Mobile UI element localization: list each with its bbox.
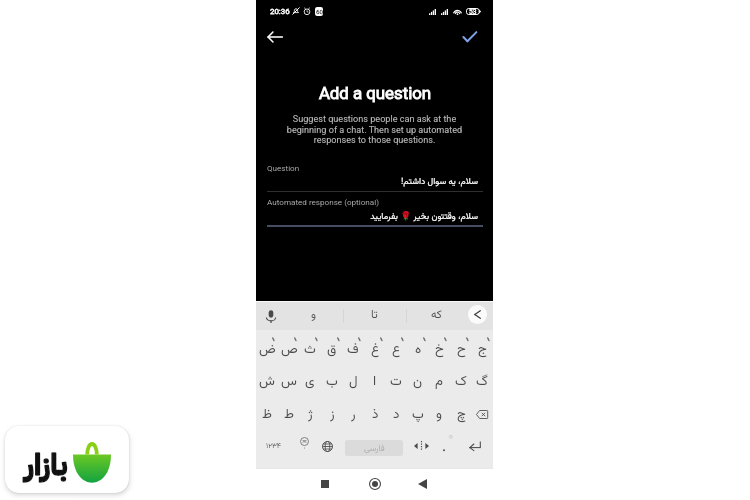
button[interactable]: غ [364, 333, 386, 365]
button[interactable]: ث [299, 333, 321, 365]
button[interactable]: خ [428, 333, 450, 365]
staticText: ذ [372, 404, 379, 425]
staticText: ک [455, 371, 467, 392]
staticText: ژ [308, 404, 313, 425]
staticText: 53 [469, 8, 477, 15]
button[interactable]: ز [321, 398, 343, 430]
button[interactable]: Recent apps [311, 470, 339, 498]
staticText: ج [478, 339, 487, 360]
staticText: فارسی [364, 442, 385, 455]
button[interactable]: ا [364, 365, 386, 397]
button[interactable]: Change keyboard language [315, 430, 339, 462]
staticText: ض [259, 339, 276, 360]
button[interactable]: پ [407, 398, 429, 430]
staticText: ح [457, 339, 466, 360]
button[interactable]: چ [450, 398, 472, 430]
staticText: ا [373, 371, 377, 392]
button[interactable]: Navigate up [262, 24, 288, 50]
staticText: بازار [25, 442, 68, 487]
staticText: ه [415, 339, 422, 360]
button[interactable]: ش [256, 365, 278, 397]
staticText: س [281, 371, 297, 392]
button[interactable]: س [278, 365, 300, 397]
button[interactable]: ۱۲۳۴ [262, 430, 286, 462]
button[interactable]: ه [407, 333, 429, 365]
staticText: ز [330, 404, 335, 425]
staticText: م [435, 371, 443, 392]
button[interactable]: ن [407, 365, 429, 397]
button[interactable]: ل [342, 365, 364, 397]
button[interactable]: که [407, 302, 466, 328]
staticText: ن [413, 371, 423, 392]
button[interactable]: ب [321, 365, 343, 397]
staticText: ث [304, 339, 316, 360]
button[interactable]: Save [456, 23, 482, 49]
staticText: ب [326, 371, 338, 392]
button[interactable]: ظ [256, 398, 278, 430]
staticText: ۱۲۳۴ [266, 440, 282, 452]
staticText: تا [371, 306, 378, 324]
staticText: ص [281, 339, 298, 360]
button[interactable]: ژ [299, 398, 321, 430]
button[interactable]: ف [342, 333, 364, 365]
button[interactable]: Emoji [292, 430, 316, 462]
staticText: 60 [316, 8, 323, 15]
button[interactable]: ق [321, 333, 343, 365]
staticText: سلام، یه سوال داشتم! [268, 175, 478, 189]
button[interactable]: م [428, 365, 450, 397]
staticText: د [393, 404, 400, 425]
staticText: Suggest questions people can ask at the … [272, 114, 477, 145]
button[interactable]: گ [471, 365, 493, 397]
staticText: بازار [25, 442, 68, 487]
button[interactable]: Home [361, 470, 389, 498]
staticText: ف [347, 339, 359, 360]
button[interactable]: ح [450, 333, 472, 365]
staticText: Automated response (optional) [267, 197, 379, 206]
staticText: چ [457, 404, 466, 425]
staticText: که [431, 306, 442, 324]
button[interactable]: ط [278, 398, 300, 430]
staticText: ش [259, 371, 275, 392]
staticText: 20:36 [270, 7, 290, 16]
button[interactable]: ک [450, 365, 472, 397]
button[interactable]: و [428, 398, 450, 430]
button[interactable]: Voice input [259, 303, 283, 327]
button[interactable]: ص [278, 333, 300, 365]
staticText: ط [284, 404, 294, 425]
button[interactable]: ج [471, 333, 493, 365]
button[interactable]: Backspace [471, 398, 493, 430]
staticText: گ [476, 371, 488, 392]
button[interactable]: Period [432, 430, 456, 462]
staticText: ع [392, 339, 401, 360]
staticText: پ [412, 404, 424, 425]
button[interactable]: Back [408, 470, 436, 498]
button[interactable]: Move cursor [409, 430, 433, 462]
button[interactable]: د [385, 398, 407, 430]
staticText: ظ [262, 404, 272, 425]
button[interactable]: و [285, 302, 343, 328]
button[interactable]: More suggestions [468, 305, 487, 324]
staticText: ل [349, 371, 358, 392]
button[interactable]: ذ [364, 398, 386, 430]
button[interactable]: تا [343, 302, 406, 328]
button[interactable]: Bazaar [5, 426, 129, 493]
staticText: Question [267, 163, 300, 172]
staticText: غ [371, 339, 380, 360]
button[interactable]: ی [299, 365, 321, 397]
button[interactable]: فارسی [345, 440, 403, 456]
staticText: Add a question [260, 83, 490, 103]
button[interactable]: ر [342, 398, 364, 430]
staticText: ق [327, 339, 337, 360]
staticText: و [311, 306, 317, 324]
button[interactable]: ض [256, 333, 278, 365]
button[interactable]: Enter [462, 430, 486, 462]
staticText: و [436, 404, 442, 425]
staticText: سلام، وقتتون بخیر 🌹 بفرمایید [268, 210, 478, 224]
staticText: ی [305, 371, 315, 392]
staticText: ر [351, 404, 356, 425]
staticText: خ [435, 339, 444, 360]
button[interactable]: ت [385, 365, 407, 397]
button[interactable]: ع [385, 333, 407, 365]
staticText: ت [390, 371, 402, 392]
